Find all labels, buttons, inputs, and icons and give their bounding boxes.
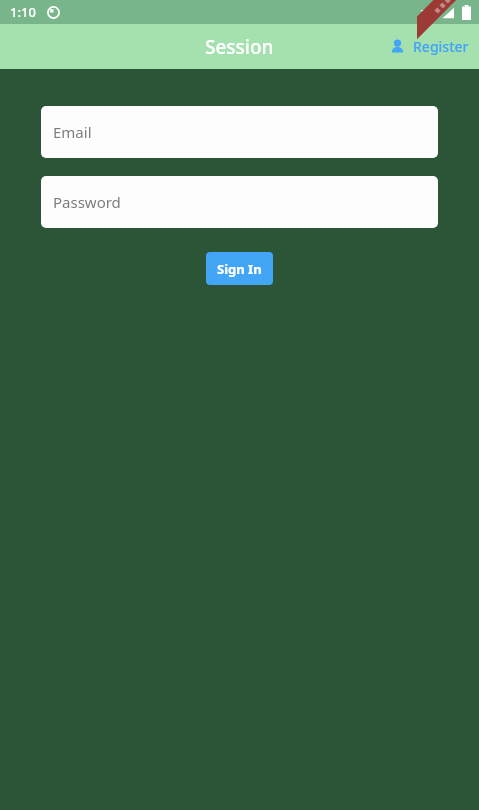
button[interactable]: Sign In [206, 252, 273, 285]
staticText: Session [205, 34, 274, 60]
staticText: 1:10 [10, 3, 36, 21]
button[interactable]: Email [41, 106, 438, 158]
staticText: Sign In [217, 260, 262, 278]
staticText: Email [53, 122, 92, 142]
button[interactable]: Password [41, 176, 438, 228]
staticText: Register [413, 37, 469, 56]
button[interactable]: Register account [385, 31, 473, 62]
other: Register account [389, 38, 406, 55]
staticText: Password [53, 192, 121, 212]
